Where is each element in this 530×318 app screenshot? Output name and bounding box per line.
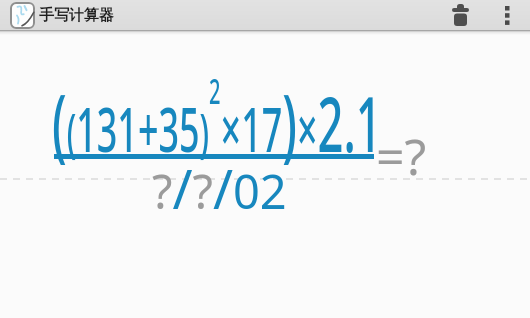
staticText: ?/?/02 [152,151,287,225]
staticText: =? [376,122,427,190]
staticText: 手写计算器 [39,6,114,25]
button[interactable] [484,0,530,30]
button[interactable] [436,0,484,30]
staticText: ((131+35)2×17)×2.1 [52,66,382,175]
